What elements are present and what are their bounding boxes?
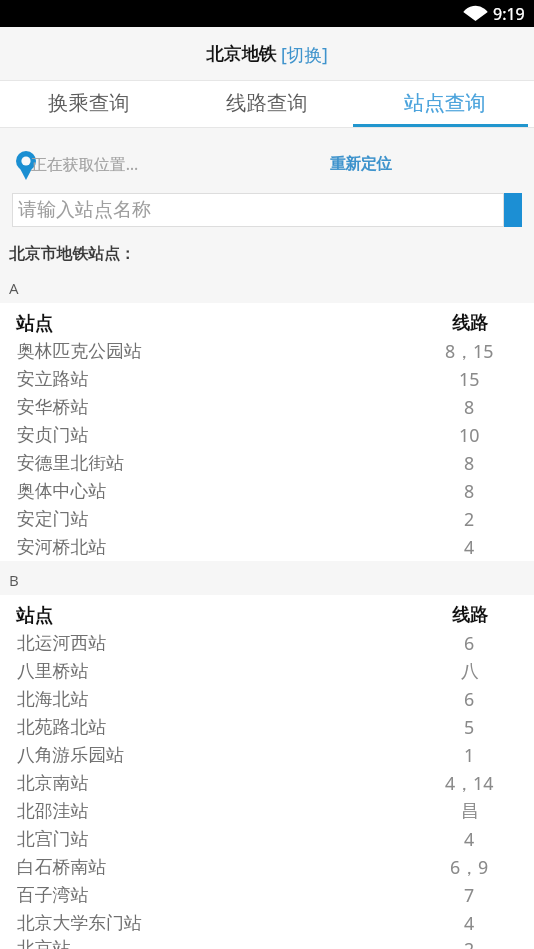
button[interactable]: 北宫门站	[0, 825, 534, 853]
staticText: 2	[464, 937, 475, 949]
staticText: 线路查询	[226, 90, 308, 116]
button[interactable]: 站点查询	[356, 81, 534, 128]
staticText: 重新定位	[330, 154, 392, 174]
button[interactable]: 北邵洼站	[0, 797, 534, 825]
staticText: 安华桥站	[17, 396, 89, 418]
staticText: 八角游乐园站	[17, 744, 124, 766]
staticText: 昌	[461, 800, 479, 822]
button[interactable]: 安德里北街站	[0, 449, 534, 477]
button[interactable]: 八里桥站	[0, 657, 534, 685]
button[interactable]: 当前位置	[16, 146, 144, 181]
staticText: 5	[464, 715, 475, 739]
staticText: 6	[464, 631, 475, 655]
staticText: 奥林匹克公园站	[17, 340, 142, 362]
button[interactable]: 请输入站点名称	[12, 193, 504, 227]
staticText: 安贞门站	[17, 424, 89, 446]
button[interactable]: 安贞门站	[0, 421, 534, 449]
staticText: 北宫门站	[17, 828, 89, 850]
staticText: 北京市地铁站点：	[9, 244, 136, 264]
staticText: 10	[459, 423, 480, 447]
staticText: 换乘查询	[48, 90, 130, 116]
staticText: 站点	[16, 604, 53, 627]
button[interactable]: 奥体中心站	[0, 477, 534, 505]
staticText: 4	[464, 911, 475, 935]
staticText: 安立路站	[17, 368, 89, 390]
staticText: 1	[464, 743, 475, 767]
staticText: 8	[464, 479, 475, 503]
staticText: B	[9, 570, 19, 590]
button[interactable]: [切换]	[281, 42, 328, 66]
staticText: 正在获取位置…	[31, 153, 139, 175]
button[interactable]: 换乘查询	[0, 81, 178, 128]
staticText: 北苑路北站	[17, 716, 106, 738]
staticText: 安河桥北站	[17, 536, 106, 558]
button[interactable]: 奥林匹克公园站	[0, 337, 534, 365]
staticText: 7	[464, 883, 475, 907]
staticText: 八	[461, 660, 479, 682]
button[interactable]: 八角游乐园站	[0, 741, 534, 769]
staticText: 4，14	[445, 771, 494, 795]
staticText: 8，15	[445, 339, 494, 363]
staticText: 北海北站	[17, 688, 89, 710]
staticText: 4	[464, 535, 475, 559]
staticText: 百子湾站	[17, 884, 89, 906]
staticText: 北京南站	[17, 772, 89, 794]
button[interactable]: 北运河西站	[0, 629, 534, 657]
staticText: 2	[464, 507, 475, 531]
staticText: 15	[459, 367, 480, 391]
button[interactable]: 安定门站	[0, 505, 534, 533]
staticText: A	[9, 278, 19, 298]
button[interactable]: 北海北站	[0, 685, 534, 713]
staticText: 北运河西站	[17, 632, 106, 654]
staticText: 站点	[16, 312, 53, 335]
button[interactable]: 北京南站	[0, 769, 534, 797]
button[interactable]: 重新定位	[318, 146, 404, 181]
staticText: 北京地铁	[206, 43, 277, 65]
staticText: 安德里北街站	[17, 452, 124, 474]
staticText: [切换]	[281, 42, 328, 66]
button[interactable]: 安立路站	[0, 365, 534, 393]
staticText: 4	[464, 827, 475, 851]
button[interactable]: 安华桥站	[0, 393, 534, 421]
staticText: 北京大学东门站	[17, 912, 142, 934]
button[interactable]: 北京大学东门站	[0, 909, 534, 937]
button[interactable]: 安河桥北站	[0, 533, 534, 561]
staticText: 8	[464, 395, 475, 419]
staticText: 站点查询	[404, 90, 486, 116]
other: Wi-Fi	[465, 5, 486, 21]
button[interactable]: 北苑路北站	[0, 713, 534, 741]
staticText: 安定门站	[17, 508, 89, 530]
staticText: 请输入站点名称	[18, 198, 151, 222]
staticText: 6，9	[450, 855, 489, 879]
staticText: 白石桥南站	[17, 856, 106, 878]
staticText: 北京站	[17, 937, 71, 949]
staticText: 北邵洼站	[17, 800, 89, 822]
staticText: 9:19	[493, 3, 525, 25]
staticText: 八里桥站	[17, 660, 89, 682]
staticText: 线路	[452, 312, 488, 335]
staticText: 奥体中心站	[17, 480, 106, 502]
staticText: 6	[464, 687, 475, 711]
button[interactable]: 白石桥南站	[0, 853, 534, 881]
staticText: 8	[464, 451, 475, 475]
staticText: 线路	[452, 604, 488, 627]
button[interactable]: 百子湾站	[0, 881, 534, 909]
button[interactable]: 北京站	[0, 937, 534, 949]
button[interactable]: 线路查询	[178, 81, 356, 128]
